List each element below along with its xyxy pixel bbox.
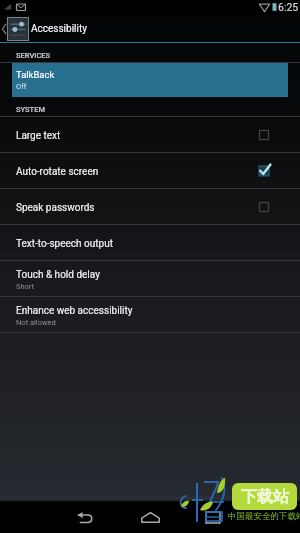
staticText: SYSTEM [16, 105, 45, 114]
staticText: Large text [16, 130, 61, 142]
staticText: Not allowed [16, 318, 56, 327]
button[interactable]: Speak passwords [0, 189, 300, 224]
button[interactable]: Large text [0, 117, 300, 152]
staticText: 6:25 [278, 1, 299, 13]
staticText: Speak passwords [16, 202, 95, 214]
other: Back [1, 23, 7, 35]
button[interactable]: Enhance web accessibility [0, 297, 300, 332]
button[interactable]: Text-to-speech output [0, 225, 300, 260]
staticText: Off [16, 82, 27, 91]
button[interactable]: TalkBack [12, 63, 288, 97]
staticText: Text-to-speech output [16, 238, 113, 250]
button[interactable]: Back [64, 502, 104, 533]
button[interactable]: Home [130, 502, 170, 533]
button[interactable]: Auto-rotate screen [0, 153, 300, 188]
staticText: Enhance web accessibility [16, 305, 133, 317]
button[interactable]: Back [0, 15, 300, 42]
staticText: Short [16, 282, 35, 291]
staticText: 下载站 [241, 487, 289, 507]
staticText: SERVICES [16, 51, 51, 60]
staticText: Auto-rotate screen [16, 166, 99, 178]
staticText: TalkBack [16, 69, 55, 80]
staticText: 中国最安全的下载站 [228, 511, 300, 522]
button[interactable]: Recent apps [193, 502, 233, 533]
button[interactable]: Touch & hold delay [0, 261, 300, 296]
staticText: Touch & hold delay [16, 269, 100, 281]
staticText: Accessibility [31, 23, 87, 35]
